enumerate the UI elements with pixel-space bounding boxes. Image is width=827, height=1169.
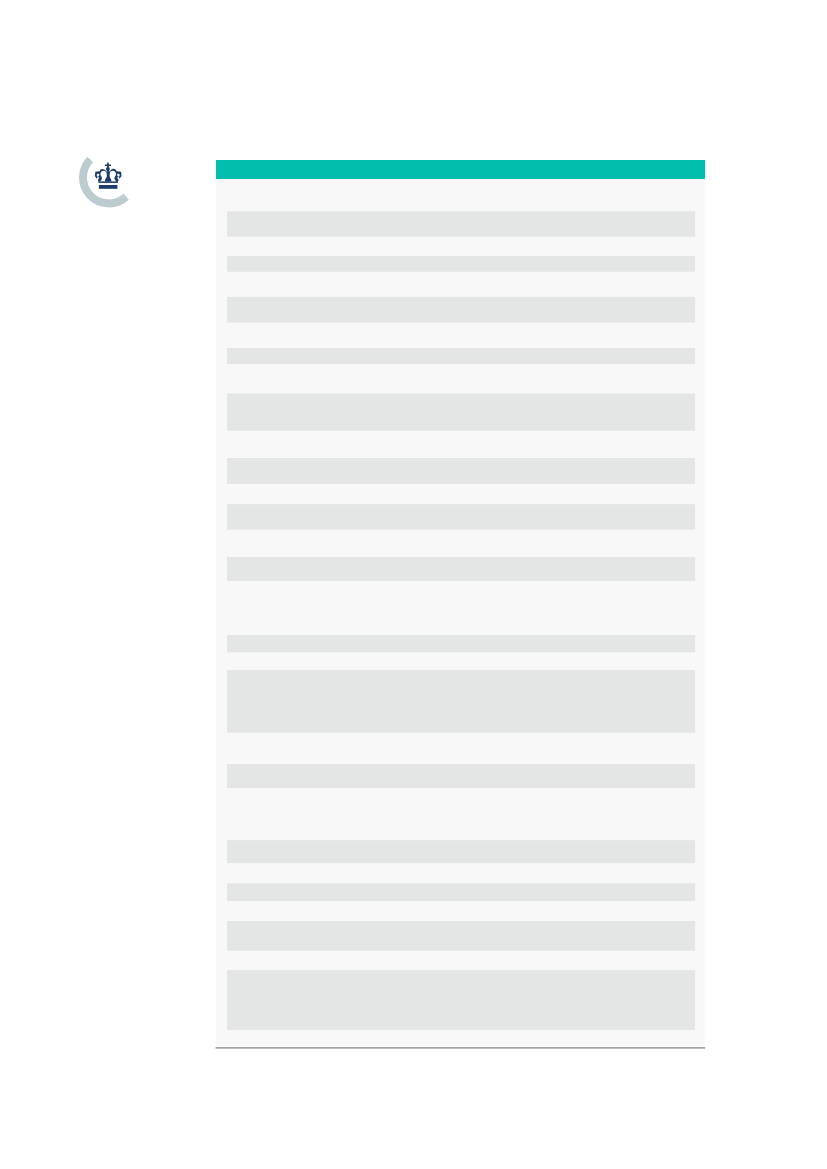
button[interactable]: Document preview, loading xyxy=(215,159,707,1051)
button[interactable]: Danish government crown logo xyxy=(77,154,131,208)
